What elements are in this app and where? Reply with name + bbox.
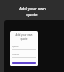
staticText: Add your own: [19, 6, 46, 11]
staticText: quote: [26, 12, 38, 17]
staticText: Author: [12, 53, 20, 56]
staticText: Add your own quote: [12, 33, 36, 41]
staticText: Quote: [12, 45, 19, 48]
button[interactable]: SAVE: [12, 62, 36, 64]
